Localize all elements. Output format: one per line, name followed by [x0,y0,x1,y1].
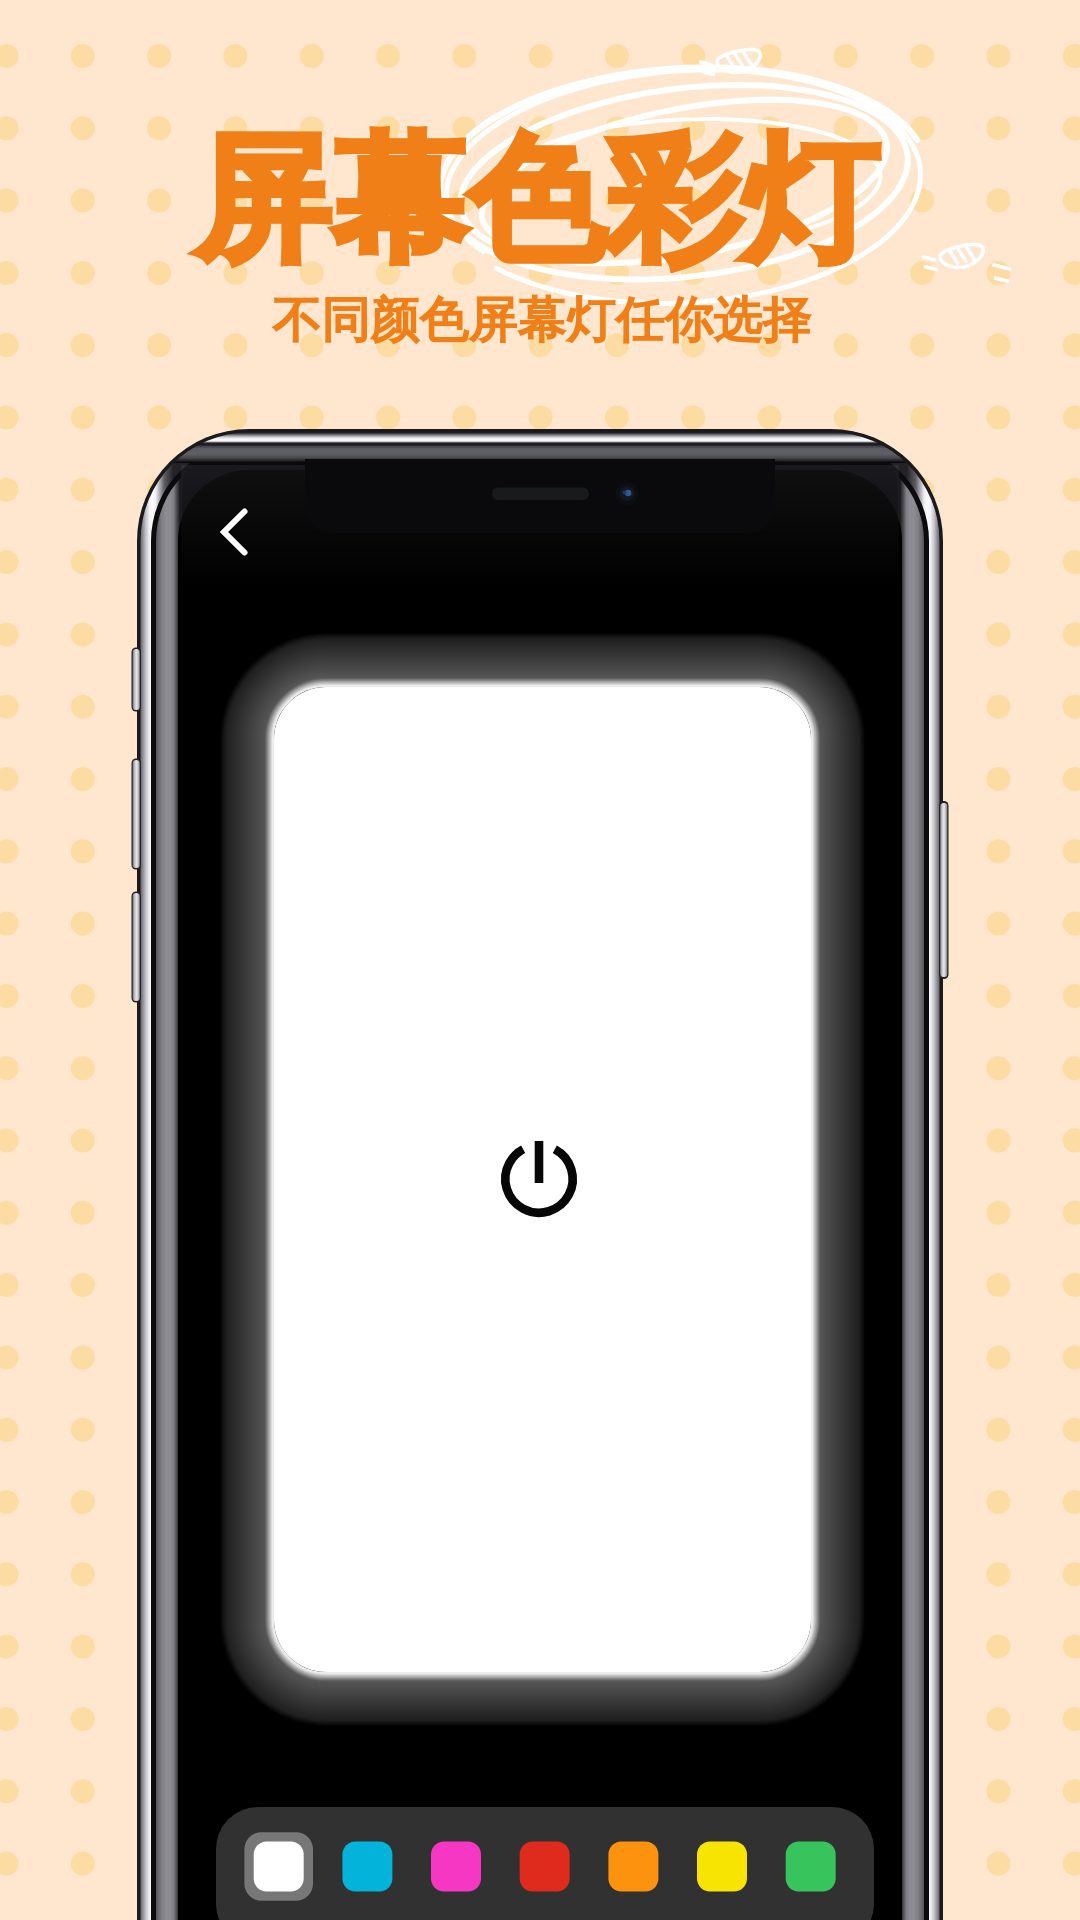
button[interactable]: Orange screen colour [604,1836,662,1894]
button[interactable]: Cyan screen colour [337,1836,395,1894]
button[interactable]: Pink screen colour [427,1836,485,1894]
button[interactable]: Back [196,492,276,572]
button[interactable]: Yellow screen colour [692,1836,750,1894]
button[interactable]: Red screen colour [516,1836,574,1894]
button[interactable]: Toggle screen light [274,687,811,1672]
button[interactable]: White screen colour [250,1836,308,1894]
staticText: 屏幕色彩灯 [193,115,878,288]
button[interactable]: Green screen colour [781,1836,839,1894]
staticText: 不同颜色屏幕灯任你选择 [272,290,811,352]
